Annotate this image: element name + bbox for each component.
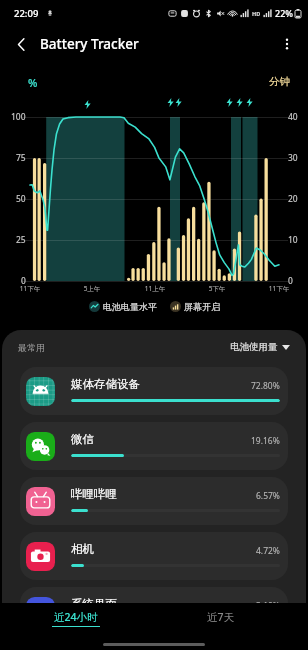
staticText: 72.80%	[251, 380, 280, 392]
staticText: 11下午	[264, 284, 294, 293]
staticText: 20	[288, 193, 298, 205]
staticText: 媒体存储设备	[71, 377, 140, 391]
button[interactable]: 电池使用量	[230, 341, 290, 353]
staticText: 30	[288, 152, 298, 164]
staticText: 最常用	[18, 342, 45, 353]
staticText: 系统界面	[71, 597, 117, 611]
button[interactable]: 微信	[20, 422, 288, 470]
staticText: 哔哩哔哩	[71, 487, 117, 501]
staticText: 100	[11, 111, 26, 123]
staticText: 0	[288, 275, 293, 287]
staticText: 19.16%	[251, 435, 280, 447]
button[interactable]: More options	[272, 29, 302, 59]
staticText: 屏幕开启	[184, 301, 220, 312]
staticText: 微信	[71, 432, 94, 446]
button[interactable]: 近24小时	[52, 610, 100, 627]
staticText: 5上午	[77, 284, 107, 293]
staticText: 22%	[275, 7, 293, 19]
button[interactable]: 系统界面	[20, 587, 288, 635]
staticText: 近7天	[207, 610, 235, 624]
staticText: 40	[288, 111, 298, 123]
button[interactable]: 近7天	[207, 610, 235, 624]
button[interactable]: 哔哩哔哩	[20, 477, 288, 525]
staticText: 4.72%	[256, 545, 280, 557]
staticText: 分钟	[269, 75, 290, 88]
button[interactable]: 媒体存储设备	[20, 367, 288, 415]
staticText: 电池使用量	[230, 341, 278, 353]
staticText: 近24小时	[54, 610, 98, 624]
staticText: 50	[16, 193, 26, 205]
staticText: 75	[16, 152, 26, 164]
staticText: 11上午	[140, 284, 170, 293]
staticText: 22:09	[14, 7, 39, 20]
staticText: 0	[21, 275, 26, 287]
staticText: Battery Tracker	[40, 35, 139, 53]
staticText: 6.57%	[256, 490, 280, 502]
staticText: 相机	[71, 542, 94, 556]
staticText: HD	[252, 10, 261, 17]
staticText: 25	[16, 234, 26, 246]
staticText: 11下午	[15, 284, 45, 293]
staticText: 3.10%	[256, 600, 280, 612]
staticText: 10	[288, 234, 298, 246]
button[interactable]: Back	[6, 29, 36, 59]
button[interactable]: 相机	[20, 532, 288, 580]
staticText: %	[28, 75, 38, 90]
staticText: 5下午	[202, 284, 232, 293]
staticText: 电池电量水平	[103, 301, 157, 312]
